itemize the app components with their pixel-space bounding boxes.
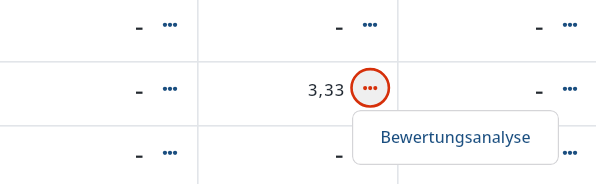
button[interactable]: Weitere Optionen bbox=[549, 131, 591, 173]
button[interactable]: Weitere Optionen bbox=[149, 67, 191, 109]
button[interactable]: Weitere Optionen bbox=[549, 67, 591, 109]
button[interactable]: Weitere Optionen bbox=[149, 131, 191, 173]
button[interactable]: Bewertungsanalyse bbox=[352, 110, 559, 165]
button[interactable]: Weitere Optionen bbox=[349, 131, 391, 173]
staticText: Bewertungsanalyse bbox=[380, 126, 531, 148]
staticText: 3,33 bbox=[308, 78, 346, 100]
button[interactable]: Weitere Optionen bbox=[349, 67, 391, 109]
button[interactable]: Weitere Optionen bbox=[349, 3, 391, 45]
button[interactable]: Weitere Optionen bbox=[549, 3, 591, 45]
button[interactable]: Weitere Optionen bbox=[149, 3, 191, 45]
